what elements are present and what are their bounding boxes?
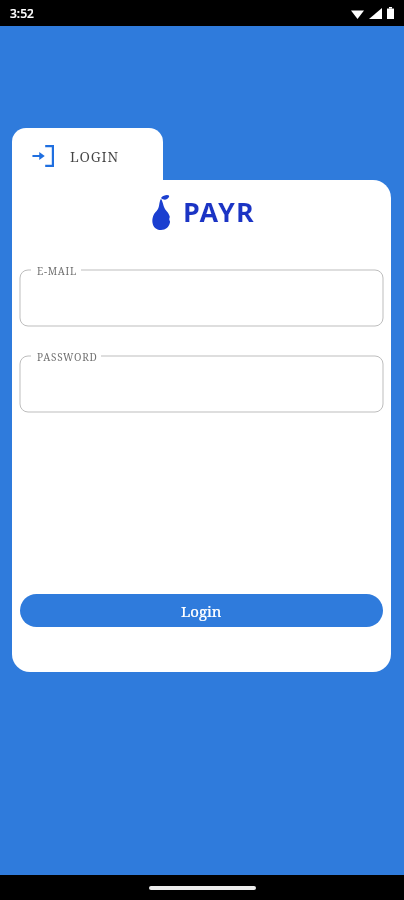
button[interactable]: Login [12, 128, 163, 184]
staticText: 3:52 [10, 5, 34, 21]
staticText: LOGIN [70, 147, 119, 166]
button[interactable]: Login [20, 594, 383, 627]
other: Login [32, 145, 54, 167]
staticText: E-MAIL [37, 264, 77, 278]
staticText: PASSWORD [37, 350, 98, 364]
staticText: Login [181, 601, 222, 621]
staticText: PAYR [183, 193, 255, 230]
button[interactable]: E-MAIL [20, 262, 383, 326]
button[interactable]: PASSWORD [20, 348, 383, 412]
